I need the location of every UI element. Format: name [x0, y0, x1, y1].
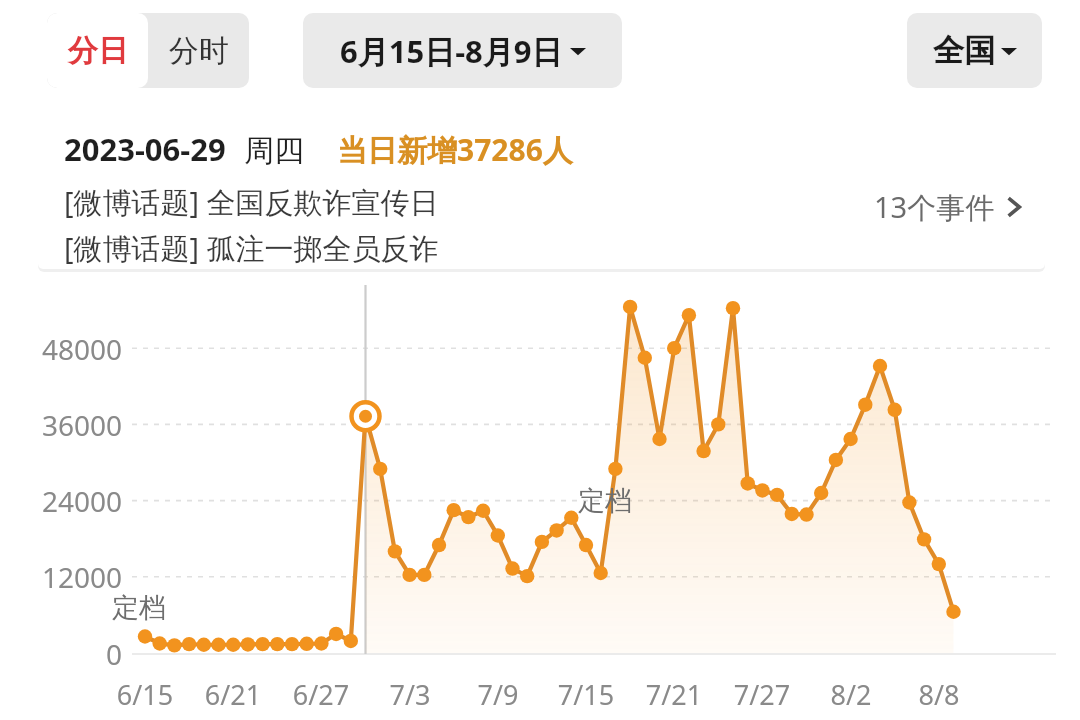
button[interactable]: 2023-06-29 — [38, 108, 1045, 269]
staticText: 6/21 — [193, 676, 273, 713]
staticText: 6/15 — [105, 676, 185, 713]
staticText: 定档 — [112, 591, 166, 625]
staticText: 6/27 — [281, 676, 361, 713]
button[interactable]: 13个事件 — [874, 187, 1023, 227]
staticText: 7/21 — [634, 676, 714, 713]
staticText: 12000 — [0, 558, 122, 596]
button[interactable]: 分日 — [47, 13, 148, 88]
staticText: [微博话题] 孤注一掷全员反诈 — [64, 228, 439, 268]
button[interactable]: 6月15日-8月9日 — [303, 13, 622, 88]
staticText: 48000 — [0, 330, 122, 368]
staticText: 8/8 — [899, 676, 979, 713]
staticText: 7/15 — [546, 676, 626, 713]
staticText: 24000 — [0, 482, 122, 520]
staticText: 8/2 — [811, 676, 891, 713]
staticText: 36000 — [0, 406, 122, 444]
staticText: 全国 — [933, 31, 995, 70]
staticText: 0 — [0, 635, 122, 673]
button[interactable]: 分时 — [148, 13, 249, 88]
staticText: 7/3 — [370, 676, 450, 713]
staticText: 当日新增37286人 — [337, 129, 573, 170]
staticText: 2023-06-29 — [64, 128, 226, 170]
staticText: 分时 — [169, 32, 229, 70]
staticText: 分日 — [68, 32, 128, 70]
staticText: 6月15日-8月9日 — [340, 30, 563, 72]
button[interactable]: 全国 — [907, 13, 1042, 88]
staticText: [微博话题] 全国反欺诈宣传日 — [64, 182, 439, 222]
staticText: 13个事件 — [874, 187, 995, 227]
staticText: 定档 — [578, 484, 632, 518]
staticText: 7/9 — [458, 676, 538, 713]
staticText: 7/27 — [722, 676, 802, 713]
staticText: 周四 — [244, 132, 304, 170]
